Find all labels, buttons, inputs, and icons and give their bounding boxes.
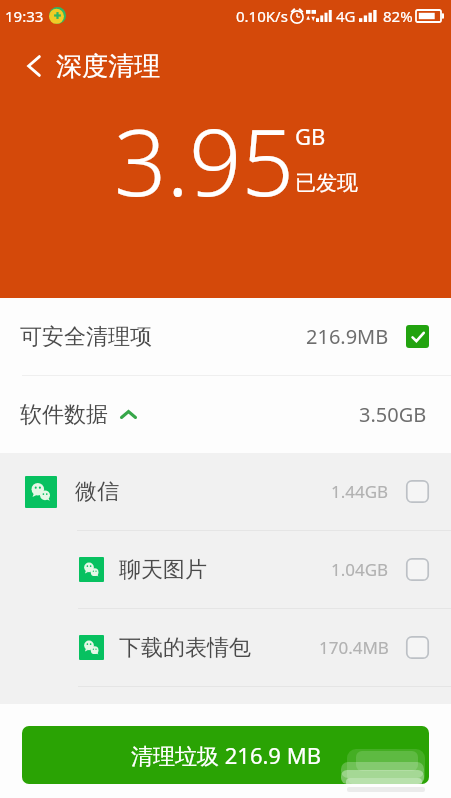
staticText: 3.50GB [359,401,427,428]
staticText: 3.95 [114,98,295,223]
staticText: 19:33 [5,6,44,26]
staticText: 下载的表情包 [119,634,251,662]
button[interactable]: 聊天图片 [0,531,451,608]
staticText: 微信 [75,478,119,506]
button[interactable]: Back [0,40,56,92]
staticText: 216.9MB [306,323,389,350]
button[interactable]: 下载的表情包 [0,609,451,686]
staticText: 清理垃圾 216.9 MB [131,740,321,770]
staticText: GB [295,121,326,151]
staticText: 聊天图片 [119,556,207,584]
button[interactable]: 清理垃圾 216.9 MB [22,726,429,784]
staticText: 已发现 [295,170,358,196]
staticText: 82% [383,6,413,26]
staticText: 170.4MB [319,636,389,659]
button[interactable]: 微信 [0,453,451,530]
staticText: 4G [336,6,356,26]
staticText: 深度清理 [56,50,160,83]
staticText: 软件数据 [20,401,108,429]
button[interactable]: 软件数据 [0,376,451,453]
button[interactable]: 可安全清理项 [0,298,451,375]
staticText: 1.04GB [331,558,389,581]
staticText: 可安全清理项 [20,323,152,351]
staticText: 1.44GB [331,480,389,503]
staticText: 0.10K/s [236,6,288,26]
